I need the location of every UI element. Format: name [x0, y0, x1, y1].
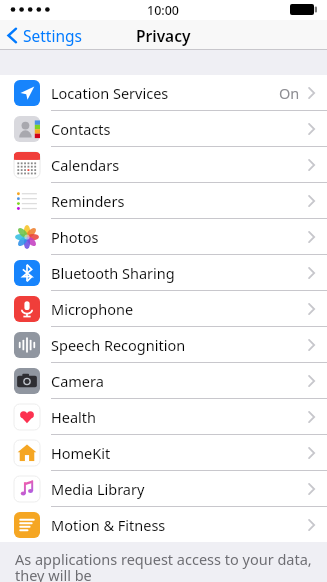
staticText: Media Library	[51, 479, 308, 499]
staticText: Reminders	[51, 191, 308, 211]
staticText: Calendars	[51, 155, 308, 175]
button[interactable]: Bluetooth Sharing	[0, 255, 327, 290]
staticText: On	[279, 83, 300, 103]
staticText: Speech Recognition	[51, 335, 308, 355]
button[interactable]: Motion & Fitness	[0, 507, 327, 542]
button[interactable]: Health	[0, 399, 327, 434]
button[interactable]: Calendars	[0, 147, 327, 182]
staticText: Location Services	[51, 83, 279, 103]
button[interactable]: Microphone	[0, 291, 327, 326]
staticText: Microphone	[51, 299, 308, 319]
staticText: Camera	[51, 371, 308, 391]
staticText: Photos	[51, 227, 308, 247]
staticText: Bluetooth Sharing	[51, 263, 308, 283]
staticText: Settings	[23, 25, 82, 46]
button[interactable]: Media Library	[0, 471, 327, 506]
button[interactable]: Settings	[0, 21, 90, 50]
staticText: 10:00	[147, 2, 180, 19]
button[interactable]: Photos	[0, 219, 327, 254]
button[interactable]: Speech Recognition	[0, 327, 327, 362]
button[interactable]: Camera	[0, 363, 327, 398]
staticText: HomeKit	[51, 443, 308, 463]
button[interactable]: HomeKit	[0, 435, 327, 470]
staticText: Contacts	[51, 119, 308, 139]
staticText: Health	[51, 407, 308, 427]
button[interactable]: Reminders	[0, 183, 327, 218]
staticText: As applications request access to your d…	[15, 549, 315, 582]
button[interactable]: Location Services	[0, 75, 327, 110]
button[interactable]: Contacts	[0, 111, 327, 146]
staticText: Privacy	[136, 25, 191, 46]
staticText: Motion & Fitness	[51, 515, 308, 535]
